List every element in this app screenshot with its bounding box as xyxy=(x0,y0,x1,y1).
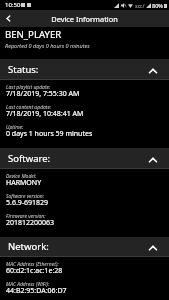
button[interactable]: Software version: xyxy=(0,189,169,209)
staticText: Software: xyxy=(8,152,51,165)
staticText: BEN_PLAYER xyxy=(5,28,62,41)
staticText: 44:B2:95:DA:06:D7 xyxy=(6,286,67,295)
staticText: MAC Address (WiFi): xyxy=(6,281,50,288)
button[interactable]: Last content update: xyxy=(0,100,169,120)
staticText: Software version: xyxy=(6,193,44,200)
button[interactable]: Back xyxy=(0,10,17,27)
staticText: Last playlist update: xyxy=(6,84,51,91)
staticText: 80% xyxy=(152,2,163,9)
staticText: Status: xyxy=(8,63,39,76)
staticText: 5.6.9-691829 xyxy=(6,198,49,207)
staticText: 7/18/2019, 10:48:41 AM xyxy=(6,109,84,118)
button[interactable]: Collapse Network: xyxy=(0,237,169,257)
staticText: 60:d2:1c:ac:1e:28 xyxy=(6,266,63,275)
staticText: Uptime: xyxy=(6,124,24,131)
staticText: Network: xyxy=(8,240,49,253)
staticText: Last content update: xyxy=(6,104,52,111)
button[interactable]: MAC Address (WiFi): xyxy=(0,277,169,297)
staticText: Firmware version: xyxy=(6,213,46,220)
staticText: 10:50 xyxy=(5,1,21,9)
button[interactable]: Collapse Status: xyxy=(0,59,169,80)
button[interactable]: Last playlist update: xyxy=(0,80,169,100)
staticText: 0 days 1 hours 59 minutes xyxy=(6,129,93,138)
button[interactable]: Device Model: xyxy=(0,169,169,189)
staticText: MAC Address (Ethernet): xyxy=(6,261,59,268)
staticText: Device Model: xyxy=(6,173,37,180)
button[interactable]: Firmware version: xyxy=(0,209,169,229)
staticText: so:/ xyxy=(135,2,145,9)
staticText: 201812200063 xyxy=(6,218,55,227)
staticText: 7/18/2019, 7:55:30 AM xyxy=(6,89,80,98)
button[interactable]: MAC Address (Ethernet): xyxy=(0,257,169,277)
button[interactable]: Collapse Software: xyxy=(0,148,169,169)
staticText: Device Information xyxy=(51,14,118,24)
button[interactable]: Uptime: xyxy=(0,120,169,140)
staticText: HARMONY xyxy=(6,178,42,187)
staticText: Reported 0 days 0 hours 0 minutes xyxy=(5,42,90,49)
